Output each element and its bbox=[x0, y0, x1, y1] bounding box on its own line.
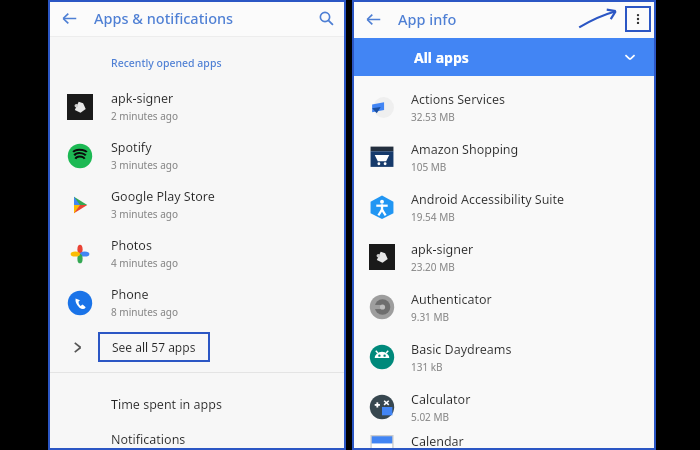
button[interactable]: Notifications bbox=[48, 431, 346, 450]
button[interactable]: Photos bbox=[48, 229, 346, 278]
staticText: 19.54 MB bbox=[411, 210, 455, 224]
staticText: App info bbox=[398, 9, 457, 29]
staticText: 8 minutes ago bbox=[111, 305, 179, 319]
staticText: 131 kB bbox=[411, 360, 443, 374]
staticText: Calendar bbox=[411, 433, 464, 450]
staticText: 23.20 MB bbox=[411, 260, 455, 274]
button[interactable]: All apps bbox=[352, 38, 656, 76]
staticText: Calculator bbox=[411, 391, 471, 408]
staticText: 9.31 MB bbox=[411, 310, 450, 324]
staticText: See all 57 apps bbox=[112, 339, 196, 355]
button[interactable]: apk-signer bbox=[352, 232, 656, 282]
staticText: apk-signer bbox=[411, 241, 474, 258]
button[interactable]: Back bbox=[54, 3, 84, 33]
button[interactable]: apk-signer bbox=[48, 82, 346, 131]
staticText: Apps & notifications bbox=[94, 8, 234, 28]
staticText: Notifications bbox=[111, 431, 186, 448]
button[interactable]: Phone bbox=[48, 278, 346, 327]
button[interactable]: Spotify bbox=[48, 131, 346, 180]
staticText: 105 MB bbox=[411, 160, 447, 174]
staticText: Basic Daydreams bbox=[411, 341, 512, 358]
button[interactable]: Back bbox=[358, 4, 388, 34]
staticText: Recently opened apps bbox=[111, 56, 222, 70]
staticText: Amazon Shopping bbox=[411, 141, 519, 158]
staticText: 3 minutes ago bbox=[111, 207, 179, 221]
staticText: Spotify bbox=[111, 139, 152, 156]
staticText: Phone bbox=[111, 286, 149, 303]
button[interactable]: Calculator bbox=[352, 382, 656, 432]
button[interactable]: Search bbox=[312, 4, 340, 32]
button[interactable]: Calendar bbox=[352, 432, 656, 450]
staticText: Time spent in apps bbox=[111, 396, 222, 413]
staticText: 5.02 MB bbox=[411, 410, 450, 424]
staticText: 32.53 MB bbox=[411, 110, 455, 124]
button[interactable]: More options bbox=[625, 6, 651, 32]
button[interactable]: See all 57 apps bbox=[48, 327, 346, 367]
staticText: Photos bbox=[111, 237, 152, 254]
staticText: Google Play Store bbox=[111, 188, 215, 205]
button[interactable]: Amazon Shopping bbox=[352, 132, 656, 182]
button[interactable]: Google Play Store bbox=[48, 180, 346, 229]
staticText: 4 minutes ago bbox=[111, 256, 179, 270]
button[interactable]: Actions Services bbox=[352, 82, 656, 132]
staticText: apk-signer bbox=[111, 90, 174, 107]
staticText: 3 minutes ago bbox=[111, 158, 179, 172]
button[interactable]: Basic Daydreams bbox=[352, 332, 656, 382]
button[interactable]: Time spent in apps bbox=[48, 389, 346, 419]
staticText: Android Accessibility Suite bbox=[411, 191, 565, 208]
button[interactable]: Authenticator bbox=[352, 282, 656, 332]
staticText: All apps bbox=[414, 48, 469, 67]
staticText: 2 minutes ago bbox=[111, 109, 179, 123]
staticText: Actions Services bbox=[411, 91, 505, 108]
button[interactable]: Android Accessibility Suite bbox=[352, 182, 656, 232]
staticText: Authenticator bbox=[411, 291, 492, 308]
